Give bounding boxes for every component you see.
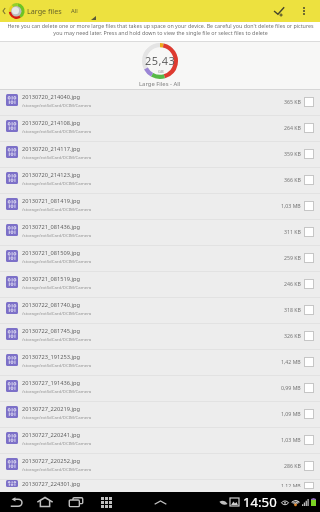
- staticText: 20130721_081509.jpg: [22, 249, 81, 257]
- button[interactable]: Recent apps: [64, 492, 88, 512]
- button[interactable]: Home: [33, 492, 57, 512]
- staticText: 1,03 MB: [281, 202, 301, 209]
- staticText: 326 KB: [284, 332, 301, 339]
- button[interactable]: 20130727_220252.jpg: [0, 454, 320, 479]
- staticText: 366 KB: [284, 176, 301, 183]
- staticText: 1,12 MB: [281, 482, 301, 487]
- staticText: 20130720_214040.jpg: [22, 93, 81, 101]
- staticText: Here you can delete one or more large fi…: [7, 22, 314, 37]
- button[interactable]: Select 20130721_081519.jpg: [304, 279, 314, 289]
- staticText: /storage/extSdCard/DCIM/Camera: [22, 128, 92, 134]
- staticText: 259 KB: [284, 254, 301, 261]
- button[interactable]: Select 20130723_191253.jpg: [304, 357, 314, 367]
- staticText: 1,09 MB: [281, 410, 301, 417]
- button[interactable]: 20130721_081436.jpg: [0, 220, 320, 245]
- button[interactable]: Select 20130722_081745.jpg: [304, 331, 314, 341]
- staticText: /storage/extSdCard/DCIM/Camera: [22, 154, 92, 160]
- button[interactable]: 20130720_214123.jpg: [0, 168, 320, 193]
- staticText: 20130721_081419.jpg: [22, 197, 81, 205]
- staticText: /storage/extSdCard/DCIM/Camera: [22, 414, 92, 420]
- staticText: /storage/extSdCard/DCIM/Camera: [22, 310, 92, 316]
- staticText: 20130721_081519.jpg: [22, 275, 81, 283]
- staticText: 359 KB: [284, 150, 301, 157]
- button[interactable]: Select 20130722_081740.jpg: [304, 305, 314, 315]
- staticText: 20130722_081740.jpg: [22, 301, 81, 309]
- button[interactable]: Show notifications: [150, 492, 170, 512]
- staticText: /storage/extSdCard/DCIM/Camera: [22, 284, 92, 290]
- button[interactable]: Select 20130721_081436.jpg: [304, 227, 314, 237]
- staticText: 20130720_214123.jpg: [22, 171, 81, 179]
- button[interactable]: 20130720_214040.jpg: [0, 90, 320, 115]
- button[interactable]: All: [71, 0, 103, 22]
- button[interactable]: 20130721_081519.jpg: [0, 272, 320, 297]
- button[interactable]: Select 20130727_224301.jpg: [304, 482, 314, 489]
- staticText: 20130727_220241.jpg: [22, 431, 81, 439]
- staticText: 20130722_081745.jpg: [22, 327, 81, 335]
- staticText: GB: [158, 69, 164, 74]
- staticText: /storage/extSdCard/DCIM/Camera: [22, 388, 92, 394]
- button[interactable]: All apps: [96, 492, 116, 512]
- button[interactable]: 20130727_224301.jpg: [0, 480, 320, 492]
- button[interactable]: Back: [1, 4, 7, 18]
- button[interactable]: 20130723_191253.jpg: [0, 350, 320, 375]
- staticText: /storage/extSdCard/DCIM/Camera: [22, 466, 92, 472]
- staticText: /storage/extSdCard/DCIM/Camera: [22, 362, 92, 368]
- staticText: 1,42 MB: [281, 358, 301, 365]
- staticText: /storage/extSdCard/DCIM/Camera: [22, 102, 92, 108]
- button[interactable]: 20130720_214117.jpg: [0, 142, 320, 167]
- staticText: 20130727_191436.jpg: [22, 379, 81, 387]
- button[interactable]: 20130727_220219.jpg: [0, 402, 320, 427]
- button[interactable]: 20130721_081509.jpg: [0, 246, 320, 271]
- staticText: 318 KB: [284, 306, 301, 313]
- button[interactable]: Select 20130720_214123.jpg: [304, 175, 314, 185]
- button[interactable]: 20130727_191436.jpg: [0, 376, 320, 401]
- button[interactable]: Select 20130720_214040.jpg: [304, 97, 314, 107]
- staticText: /storage/extSdCard/DCIM/Camera: [22, 336, 92, 342]
- staticText: 20130727_220219.jpg: [22, 405, 81, 413]
- staticText: 0,99 MB: [281, 384, 301, 391]
- button[interactable]: Select 20130727_220252.jpg: [304, 461, 314, 471]
- staticText: Large files: [27, 6, 62, 16]
- staticText: /storage/extSdCard/DCIM/Camera: [22, 440, 92, 446]
- staticText: All: [71, 7, 78, 15]
- staticText: 25,43: [145, 53, 176, 68]
- staticText: 311 KB: [284, 228, 301, 235]
- staticText: 1,03 MB: [281, 436, 301, 443]
- button[interactable]: Select 20130721_081509.jpg: [304, 253, 314, 263]
- staticText: 286 KB: [284, 462, 301, 469]
- staticText: /storage/extSdCard/DCIM/Camera: [22, 180, 92, 186]
- staticText: /storage/extSdCard/DCIM/Camera: [22, 258, 92, 264]
- button[interactable]: Select files: [266, 0, 292, 22]
- button[interactable]: Back: [4, 492, 28, 512]
- staticText: 20130727_224301.jpg: [22, 480, 81, 487]
- button[interactable]: Select 20130721_081419.jpg: [304, 201, 314, 211]
- button[interactable]: Select 20130727_220241.jpg: [304, 435, 314, 445]
- staticText: /storage/extSdCard/DCIM/Camera: [22, 232, 92, 238]
- button[interactable]: 20130721_081419.jpg: [0, 194, 320, 219]
- staticText: 20130720_214117.jpg: [22, 145, 81, 153]
- button[interactable]: 20130727_220241.jpg: [0, 428, 320, 453]
- button[interactable]: Select 20130727_191436.jpg: [304, 383, 314, 393]
- staticText: 20130721_081436.jpg: [22, 223, 81, 231]
- button[interactable]: More options: [294, 0, 314, 22]
- button[interactable]: Select 20130720_214108.jpg: [304, 123, 314, 133]
- staticText: 20130727_220252.jpg: [22, 457, 81, 465]
- staticText: 246 KB: [284, 280, 301, 287]
- staticText: Large Files - All: [139, 80, 181, 88]
- staticText: 264 KB: [284, 124, 301, 131]
- staticText: 365 KB: [284, 98, 301, 105]
- staticText: 20130723_191253.jpg: [22, 353, 81, 361]
- staticText: 14:50: [243, 493, 277, 511]
- button[interactable]: Select 20130720_214117.jpg: [304, 149, 314, 159]
- button[interactable]: Select 20130727_220219.jpg: [304, 409, 314, 419]
- button[interactable]: 20130722_081740.jpg: [0, 298, 320, 323]
- staticText: /storage/extSdCard/DCIM/Camera: [22, 206, 92, 212]
- button[interactable]: 20130720_214108.jpg: [0, 116, 320, 141]
- staticText: 20130720_214108.jpg: [22, 119, 81, 127]
- button[interactable]: 20130722_081745.jpg: [0, 324, 320, 349]
